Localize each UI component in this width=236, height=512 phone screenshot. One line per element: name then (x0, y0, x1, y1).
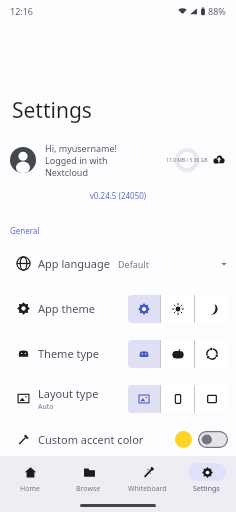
button[interactable]: Sync status (212, 153, 226, 167)
staticText: Nextcloud (45, 166, 88, 178)
staticText: Settings (12, 96, 92, 125)
other: Accent color (16, 432, 31, 447)
staticText: v0.24.5 (24050) (0, 190, 236, 201)
button[interactable]: Option 1 (128, 295, 160, 323)
other: Language (16, 256, 31, 271)
button[interactable]: Theme (0, 287, 236, 330)
staticText: Hi, myusername! (45, 142, 117, 154)
button[interactable]: Home (0, 463, 59, 494)
staticText: Layout type (38, 386, 99, 401)
button[interactable]: Option 1 (128, 340, 160, 368)
button[interactable]: Pick accent color (175, 431, 192, 448)
button[interactable]: Option 3 (195, 295, 228, 323)
staticText: App theme (38, 301, 95, 316)
staticText: Auto (38, 402, 54, 412)
button[interactable]: Option 3 (195, 385, 228, 413)
staticText: 88% (208, 5, 226, 17)
button[interactable]: Settings (177, 463, 236, 494)
button[interactable]: Whiteboard (118, 463, 177, 494)
other: Theme type (16, 346, 31, 361)
button[interactable]: Account avatar (0, 142, 236, 178)
button[interactable]: Option 2 (161, 295, 194, 323)
button[interactable]: Layout type (0, 377, 236, 420)
staticText: Default (118, 258, 149, 270)
button[interactable]: Option 2 (161, 385, 194, 413)
staticText: Settings (193, 484, 220, 494)
button[interactable]: Browse (59, 463, 118, 494)
staticText: Browse (76, 484, 101, 494)
staticText: Whiteboard (128, 484, 167, 494)
other: Layout type (16, 391, 31, 406)
button[interactable]: Theme type (0, 332, 236, 375)
staticText: Custom accent color (38, 432, 175, 447)
staticText: App language (38, 256, 110, 271)
button[interactable]: Language (0, 242, 236, 285)
button[interactable]: Toggle custom accent color (198, 431, 228, 448)
staticText: Home (20, 484, 40, 494)
other: Theme (16, 301, 31, 316)
other: Account avatar (10, 147, 36, 173)
staticText: 12:16 (10, 5, 34, 17)
staticText: 17.0 MB / 5.00 GB (166, 157, 208, 164)
staticText: General (10, 225, 40, 236)
button[interactable]: Option 1 (128, 385, 160, 413)
button[interactable]: Accent color (0, 422, 236, 456)
button[interactable]: Option 2 (161, 340, 194, 368)
staticText: Theme type (38, 346, 100, 361)
staticText: Logged in with (45, 154, 108, 166)
button[interactable]: Option 3 (195, 340, 228, 368)
